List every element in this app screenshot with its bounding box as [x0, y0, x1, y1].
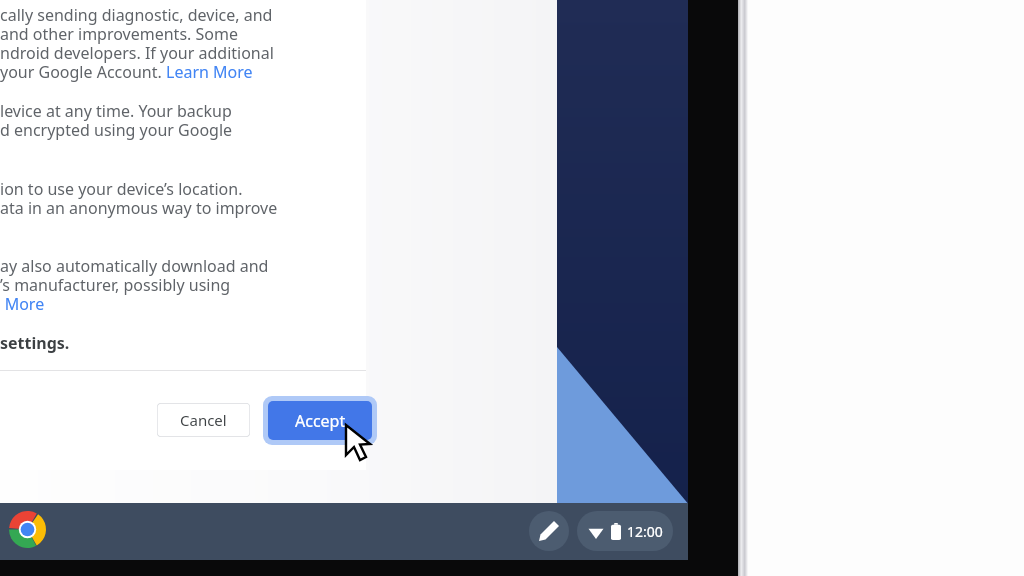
staticText: 12:00: [627, 522, 663, 541]
staticText: ay also automatically download and: [0, 255, 269, 277]
button[interactable]: Chrome browser: [9, 511, 46, 548]
staticText: ’s manufacturer, possibly using: [0, 274, 231, 296]
button[interactable]: Accept: [263, 396, 377, 445]
staticText: Accept: [295, 410, 346, 432]
staticText: settings.: [0, 332, 70, 354]
staticText: levice at any time. Your backup: [0, 100, 232, 122]
button[interactable]: Stylus tools: [529, 511, 569, 551]
staticText: and other improvements. Some: [0, 23, 238, 45]
staticText: Cancel: [180, 410, 227, 430]
staticText: ion to use your device’s location.: [0, 178, 243, 200]
button[interactable]: Status tray, 12:00: [577, 511, 673, 551]
staticText: your Google Account.: [0, 61, 166, 83]
staticText: d encrypted using your Google: [0, 119, 233, 141]
button[interactable]: rn More: [0, 293, 45, 315]
button[interactable]: Cancel: [157, 403, 250, 437]
staticText: cally sending diagnostic, device, and: [0, 4, 273, 26]
button[interactable]: Learn More: [166, 61, 253, 83]
staticText: rn More: [0, 293, 45, 315]
staticText: ata in an anonymous way to improve: [0, 197, 278, 219]
staticText: ndroid developers. If your additional: [0, 42, 274, 64]
